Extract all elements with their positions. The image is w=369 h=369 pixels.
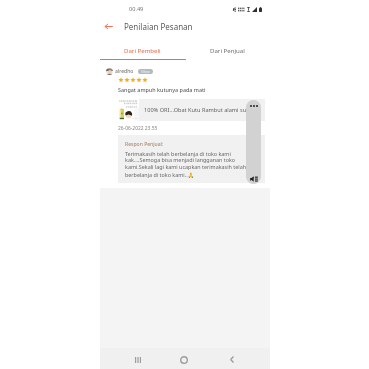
button[interactable]: Dari Penjual [185, 40, 270, 60]
staticText: Silver [141, 69, 150, 74]
button[interactable]: Home [176, 349, 192, 369]
button[interactable]: Recent apps [130, 349, 146, 369]
staticText: alredho [115, 68, 134, 75]
button[interactable]: 100% ORI...Obat Kutu Rambut alami su [117, 99, 265, 121]
staticText: Respon Penjual: [125, 141, 164, 148]
staticText: 100% ORI...Obat Kutu Rambut alami su [144, 106, 247, 114]
button[interactable]: Screen recorder overlay [246, 100, 261, 184]
staticText: Sangat ampuh kutunya pada mati [118, 86, 206, 93]
button[interactable]: Back [101, 19, 115, 33]
button[interactable]: Dari Pembeli [100, 40, 185, 60]
staticText: 00.49 [129, 5, 144, 13]
staticText: Penilaian Pesanan [124, 21, 193, 32]
staticText: Dari Penjual [210, 46, 245, 54]
staticText: 26-06-2022 23.55 [118, 125, 158, 132]
staticText: Dari Pembeli [124, 46, 161, 54]
button[interactable]: Back [224, 349, 240, 369]
staticText: Terimakasih telah berbelanja di toko kam… [125, 150, 261, 178]
